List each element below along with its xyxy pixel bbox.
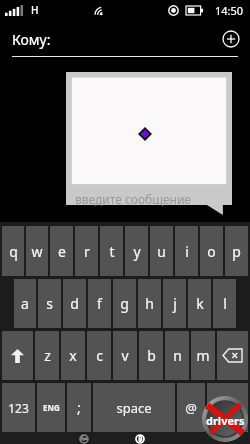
- button[interactable]: g: [113, 279, 136, 328]
- staticText: H: [31, 3, 39, 17]
- button[interactable]: @: [177, 383, 205, 432]
- staticText: l: [223, 294, 227, 313]
- staticText: j: [173, 294, 177, 313]
- button[interactable]: b: [139, 331, 163, 380]
- button[interactable]: w: [26, 226, 48, 276]
- staticText: i: [185, 242, 189, 261]
- button[interactable]: q: [2, 226, 24, 276]
- button[interactable]: Shift: [2, 331, 33, 380]
- staticText: e: [58, 242, 66, 261]
- staticText: ENG: [43, 402, 60, 413]
- button[interactable]: v: [113, 331, 137, 380]
- staticText: b: [147, 346, 156, 365]
- button[interactable]: Backspace: [217, 331, 248, 380]
- staticText: g: [120, 294, 129, 313]
- button[interactable]: m: [191, 331, 215, 380]
- button[interactable]: введите сообщение: [66, 72, 232, 215]
- button[interactable]: 123: [2, 383, 35, 432]
- staticText: 14:50: [215, 3, 244, 18]
- button[interactable]: j: [163, 279, 186, 328]
- button[interactable]: z: [35, 331, 59, 380]
- button[interactable]: t: [100, 226, 123, 276]
- staticText: Кому:: [12, 30, 51, 49]
- button[interactable]: s: [38, 279, 61, 328]
- button[interactable]: Attach: [125, 434, 155, 444]
- staticText: m: [196, 346, 210, 365]
- button[interactable]: Кому:: [0, 20, 250, 64]
- staticText: 123: [8, 400, 29, 416]
- button[interactable]: o: [200, 226, 223, 276]
- staticText: q: [9, 242, 18, 261]
- button[interactable]: h: [138, 279, 161, 328]
- staticText: w: [31, 242, 43, 261]
- button[interactable]: p: [225, 226, 248, 276]
- button[interactable]: x: [61, 331, 85, 380]
- button[interactable]: k: [188, 279, 211, 328]
- staticText: t: [109, 242, 115, 261]
- button[interactable]: ;: [67, 383, 91, 432]
- staticText: o: [207, 242, 216, 261]
- button[interactable]: u: [150, 226, 173, 276]
- button[interactable]: r: [75, 226, 98, 276]
- button[interactable]: i: [175, 226, 198, 276]
- staticText: x: [69, 346, 77, 365]
- staticText: ;: [77, 398, 81, 417]
- staticText: @: [185, 399, 197, 417]
- staticText: k: [196, 294, 204, 313]
- button[interactable]: l: [213, 279, 236, 328]
- staticText: введите сообщение: [75, 191, 191, 207]
- staticText: p: [232, 242, 241, 261]
- button[interactable]: f: [88, 279, 111, 328]
- button[interactable]: ENG: [37, 383, 65, 432]
- button[interactable]: c: [87, 331, 111, 380]
- button[interactable]: space: [93, 383, 175, 432]
- staticText: c: [96, 346, 103, 365]
- staticText: h: [145, 294, 154, 313]
- button[interactable]: y: [125, 226, 148, 276]
- staticText: a: [21, 294, 29, 313]
- staticText: f: [97, 294, 102, 313]
- button[interactable]: e: [50, 226, 73, 276]
- staticText: space: [116, 399, 152, 417]
- button[interactable]: Send message: [69, 434, 99, 444]
- button[interactable]: a: [14, 279, 36, 328]
- staticText: u: [157, 242, 166, 261]
- button[interactable]: d: [63, 279, 86, 328]
- staticText: s: [46, 294, 53, 313]
- staticText: z: [44, 346, 51, 365]
- staticText: n: [173, 346, 182, 365]
- button[interactable]: Enter: [207, 383, 248, 432]
- staticText: d: [70, 294, 79, 313]
- staticText: r: [84, 242, 90, 261]
- button[interactable]: Add contact: [222, 30, 240, 48]
- button[interactable]: n: [165, 331, 189, 380]
- staticText: v: [121, 346, 129, 365]
- staticText: y: [133, 242, 141, 261]
- staticText: drivers: [206, 413, 245, 428]
